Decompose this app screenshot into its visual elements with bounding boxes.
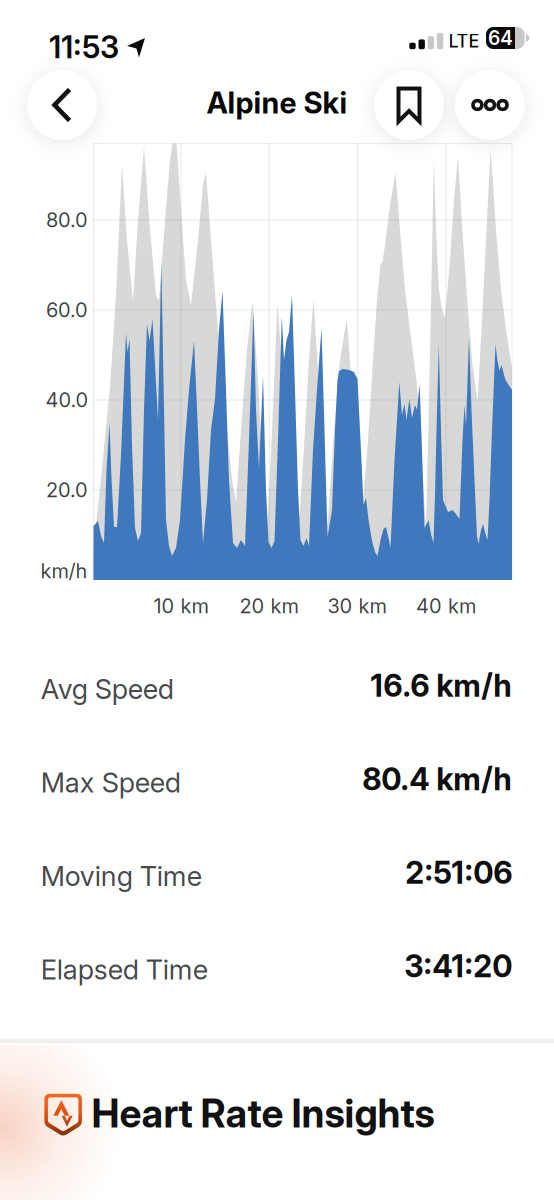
staticText: 40 km bbox=[416, 594, 476, 618]
staticText: Moving Time bbox=[41, 859, 202, 893]
staticText: 20.0 bbox=[46, 478, 88, 502]
staticText: 80.4 km/h bbox=[362, 760, 512, 797]
staticText: 10 km bbox=[153, 594, 208, 618]
button[interactable]: Back bbox=[27, 70, 97, 140]
button[interactable]: Save bbox=[374, 70, 444, 140]
staticText: 20 km bbox=[239, 594, 298, 618]
staticText: 80.0 bbox=[46, 208, 88, 232]
staticText: Avg Speed bbox=[41, 672, 174, 706]
button[interactable]: More options bbox=[455, 70, 525, 140]
staticText: 40.0 bbox=[45, 388, 88, 412]
staticText: 3:41:20 bbox=[404, 947, 512, 984]
staticText: Heart Rate Insights bbox=[91, 1090, 434, 1137]
staticText: 60.0 bbox=[46, 298, 88, 322]
staticText: 16.6 km/h bbox=[370, 667, 512, 704]
staticText: 2:51:06 bbox=[405, 854, 512, 891]
staticText: LTE bbox=[448, 30, 479, 52]
staticText: Max Speed bbox=[41, 766, 181, 799]
staticText: Alpine Ski bbox=[206, 85, 347, 121]
staticText: 64 bbox=[488, 26, 513, 50]
staticText: 11:53 bbox=[49, 28, 119, 65]
staticText: 30 km bbox=[327, 594, 386, 618]
button[interactable]: Heart Rate Insights bbox=[0, 1043, 554, 1200]
staticText: km/h bbox=[40, 559, 87, 583]
staticText: Elapsed Time bbox=[41, 953, 208, 986]
